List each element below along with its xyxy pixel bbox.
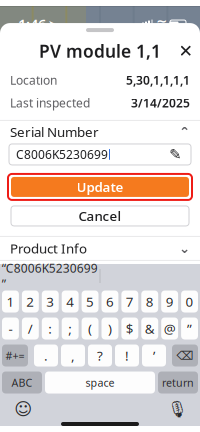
button[interactable]: 2	[22, 290, 39, 312]
button[interactable]: &	[141, 317, 158, 339]
staticText: 9	[166, 293, 174, 310]
button[interactable]: Serial Number	[0, 121, 200, 143]
button[interactable]: 1	[2, 290, 19, 312]
button[interactable]: Emoji	[10, 397, 36, 421]
staticText: 7	[126, 293, 134, 310]
button[interactable]: Product Info	[0, 237, 200, 260]
staticText: 1:46	[18, 14, 46, 34]
staticText: 2	[26, 293, 34, 310]
staticText: 3	[46, 293, 54, 310]
staticText: 5	[86, 293, 94, 310]
staticText: Location	[10, 72, 57, 88]
staticText: ☺	[14, 399, 32, 419]
button[interactable]: ,	[61, 344, 85, 366]
staticText: ABC	[11, 375, 32, 390]
staticText: ,	[71, 347, 75, 364]
button[interactable]: 4	[62, 290, 79, 312]
button[interactable]: ABC	[2, 371, 42, 393]
button[interactable]: :	[42, 317, 59, 339]
button[interactable]: Update	[8, 174, 192, 200]
button[interactable]: ’	[142, 344, 166, 366]
button[interactable]: Edit serial number	[166, 145, 184, 163]
staticText: !	[125, 347, 129, 364]
staticText: 1	[6, 293, 14, 310]
button[interactable]: 7	[121, 290, 138, 312]
button[interactable]: Cancel	[11, 206, 189, 226]
staticText: ?	[97, 347, 103, 364]
staticText: #+=	[5, 348, 24, 363]
staticText: 0	[185, 293, 193, 310]
button[interactable]: ;	[62, 317, 79, 339]
button[interactable]: (	[82, 317, 98, 339]
button[interactable]: 5	[82, 290, 98, 312]
button[interactable]: !	[115, 344, 139, 366]
staticText: ⌫	[176, 349, 193, 362]
staticText: C8006K5230699	[16, 146, 108, 162]
staticText: space	[85, 375, 114, 390]
button[interactable]: Dictation	[164, 397, 190, 421]
staticText: Product Info	[10, 240, 87, 257]
button[interactable]: Close	[172, 37, 200, 65]
staticText: .	[44, 347, 48, 364]
staticText: ≋	[156, 16, 167, 31]
button[interactable]: @	[161, 317, 178, 339]
staticText: $	[126, 320, 134, 337]
button[interactable]: )	[101, 317, 118, 339]
staticText: 🎙	[167, 400, 187, 418]
staticText: 3/14/2025	[131, 95, 190, 111]
staticText: ⌄	[179, 241, 190, 256]
staticText: ✕	[178, 41, 193, 61]
staticText: return	[162, 375, 194, 390]
button[interactable]: 6	[101, 290, 118, 312]
button[interactable]: ⌫	[172, 344, 198, 366]
button[interactable]: .	[34, 344, 58, 366]
staticText: )	[108, 320, 112, 337]
button[interactable]: 3	[42, 290, 59, 312]
button[interactable]: 8	[141, 290, 158, 312]
staticText: ;	[68, 320, 72, 337]
staticText: Cancel	[78, 207, 121, 225]
staticText: ⌃	[179, 124, 190, 139]
staticText: Activity	[10, 263, 55, 281]
button[interactable]: -	[2, 317, 19, 339]
staticText: /	[28, 320, 33, 337]
staticText: Last inspected	[10, 95, 90, 111]
staticText: Serial Number	[10, 123, 99, 141]
button[interactable]: #+=	[2, 344, 28, 366]
staticText: (	[88, 320, 92, 337]
staticText: &	[145, 320, 155, 337]
staticText: @	[164, 320, 176, 337]
button[interactable]: return	[158, 371, 198, 393]
staticText: -	[8, 320, 12, 337]
staticText: Update	[76, 178, 123, 196]
staticText: “C8006K5230699”	[2, 260, 98, 292]
staticText: 4	[66, 293, 74, 310]
staticText: ”	[187, 320, 192, 337]
staticText: ➤	[48, 18, 57, 30]
button[interactable]: /	[22, 317, 39, 339]
button[interactable]: space	[45, 371, 155, 393]
staticText: ✎	[169, 146, 181, 163]
button[interactable]: 9	[161, 290, 178, 312]
button[interactable]: 0	[181, 290, 198, 312]
staticText: ’	[153, 347, 155, 364]
button[interactable]: ”	[181, 317, 198, 339]
staticText: PV module 1,1	[39, 40, 161, 63]
staticText: 5,30,1,1,1,1	[126, 72, 190, 88]
button[interactable]: $	[121, 317, 138, 339]
button[interactable]: ?	[88, 344, 112, 366]
staticText: 6	[106, 293, 114, 310]
staticText: :	[48, 320, 52, 337]
staticText: 8	[146, 293, 154, 310]
